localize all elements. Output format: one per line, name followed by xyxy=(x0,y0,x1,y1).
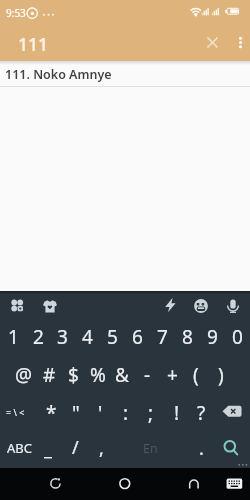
staticText: % xyxy=(90,362,106,386)
button[interactable]: * xyxy=(38,400,64,424)
staticText: ABC xyxy=(7,439,32,457)
button[interactable] xyxy=(202,32,223,53)
staticText: * xyxy=(46,400,57,424)
button[interactable] xyxy=(219,400,246,422)
staticText: 1 xyxy=(8,324,19,348)
button[interactable]: @ xyxy=(11,362,37,386)
button[interactable] xyxy=(180,470,208,498)
staticText: 5 xyxy=(107,324,118,348)
button[interactable]: $ xyxy=(60,362,86,386)
staticText: 111. Noko Amnye xyxy=(5,66,112,83)
staticText: : xyxy=(123,400,129,424)
staticText: = \ < xyxy=(6,406,25,418)
staticText: _ xyxy=(44,436,52,460)
button[interactable] xyxy=(217,436,243,459)
button[interactable] xyxy=(231,32,250,53)
staticText: ; xyxy=(148,400,154,424)
staticText: " xyxy=(72,400,80,424)
button[interactable] xyxy=(159,294,182,317)
staticText: 9 xyxy=(207,324,218,348)
staticText: 8 xyxy=(182,324,193,348)
staticText: + xyxy=(167,362,178,386)
button[interactable]: - xyxy=(134,362,160,386)
staticText: 6 xyxy=(132,324,143,348)
button[interactable] xyxy=(222,294,245,317)
button[interactable]: 8 xyxy=(174,324,200,348)
button[interactable]: ; xyxy=(138,400,164,424)
button[interactable]: + xyxy=(159,362,185,386)
button[interactable]: 3 xyxy=(49,324,75,348)
staticText: 111 xyxy=(18,32,49,56)
button[interactable]: ? xyxy=(188,400,214,424)
staticText: 9:53 xyxy=(6,6,26,20)
button[interactable]: # xyxy=(36,362,62,386)
staticText: 3 xyxy=(57,324,68,348)
button[interactable]: 7 xyxy=(149,324,175,348)
button[interactable]: ABC xyxy=(2,436,36,460)
button[interactable]: 1 xyxy=(0,324,26,348)
staticText: . xyxy=(199,436,204,460)
staticText: ! xyxy=(174,400,180,424)
button[interactable]: . xyxy=(188,436,214,460)
button[interactable]: = \ < xyxy=(0,400,30,424)
button[interactable]: 2 xyxy=(25,324,51,348)
button[interactable] xyxy=(39,294,62,317)
button[interactable]: ( xyxy=(183,362,209,386)
staticText: 0 xyxy=(232,324,243,348)
staticText: 2 xyxy=(33,324,44,348)
staticText: - xyxy=(144,362,151,386)
button[interactable]: 5 xyxy=(99,324,125,348)
button[interactable] xyxy=(220,470,248,498)
staticText: , xyxy=(99,436,104,460)
staticText: 7 xyxy=(157,324,168,348)
button[interactable]: ' xyxy=(87,400,113,424)
staticText: 4 xyxy=(82,324,93,348)
button[interactable]: : xyxy=(113,400,139,424)
button[interactable]: ! xyxy=(164,400,190,424)
button[interactable]: En xyxy=(110,436,190,460)
button[interactable]: _ xyxy=(35,436,61,460)
button[interactable]: 0 xyxy=(224,324,250,348)
button[interactable]: 4 xyxy=(74,324,100,348)
button[interactable]: 6 xyxy=(124,324,150,348)
staticText: ) xyxy=(218,362,224,386)
button[interactable] xyxy=(111,470,139,498)
staticText: ' xyxy=(98,400,103,424)
button[interactable] xyxy=(6,294,29,317)
button[interactable]: 111. Noko Amnye xyxy=(0,63,250,86)
staticText: ? xyxy=(197,400,206,424)
staticText: @ xyxy=(15,362,33,386)
button[interactable]: % xyxy=(85,362,111,386)
staticText: ( xyxy=(193,362,199,386)
staticText: / xyxy=(72,435,79,459)
button[interactable]: " xyxy=(63,400,89,424)
button[interactable]: / xyxy=(62,435,88,459)
button[interactable] xyxy=(42,470,70,498)
button[interactable]: ) xyxy=(208,362,234,386)
button[interactable]: , xyxy=(88,436,114,460)
staticText: # xyxy=(43,362,56,386)
staticText: & xyxy=(115,362,129,386)
button[interactable]: & xyxy=(109,362,135,386)
staticText: En xyxy=(143,440,158,457)
button[interactable]: 9 xyxy=(199,324,225,348)
staticText: $ xyxy=(68,362,79,386)
button[interactable] xyxy=(190,294,213,317)
